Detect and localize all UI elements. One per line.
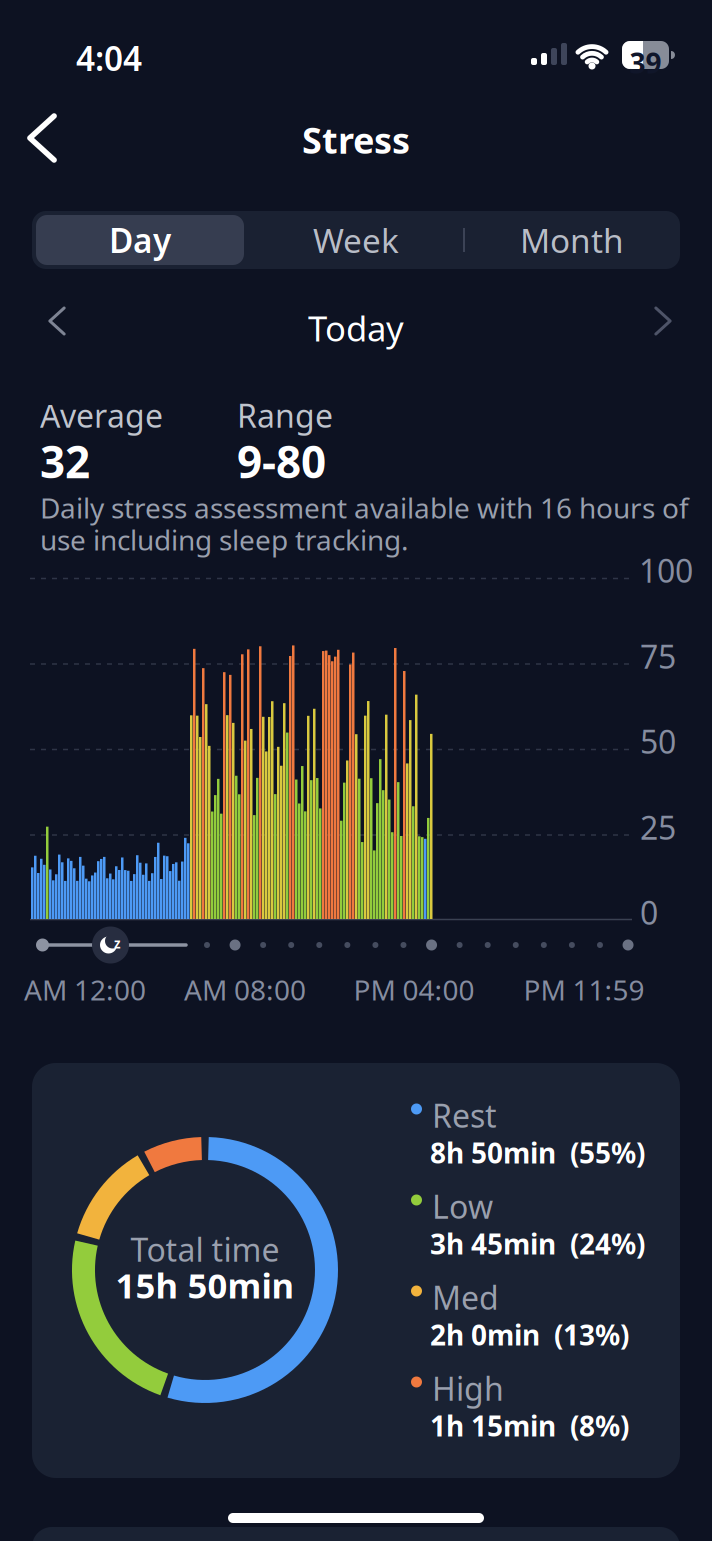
staticText: 32	[40, 432, 90, 490]
staticText: Day	[109, 218, 171, 262]
staticText: Week	[313, 218, 399, 262]
staticText: 1h 15min (8%)	[430, 1407, 629, 1444]
staticText: Rest	[432, 1094, 497, 1136]
staticText: 39	[629, 44, 661, 81]
staticText: 15h 50min	[115, 1262, 294, 1308]
staticText: Stress	[302, 116, 410, 164]
button[interactable]: Day	[36, 215, 244, 265]
staticText: 9-80	[237, 432, 326, 490]
staticText: Today	[308, 305, 404, 351]
staticText: Low	[432, 1185, 493, 1227]
staticText: 8h 50min (55%)	[430, 1134, 645, 1171]
staticText: Month	[520, 218, 624, 262]
staticText: PM 04:00	[353, 971, 474, 1008]
button[interactable]: Week	[248, 211, 464, 269]
staticText: 3h 45min (24%)	[430, 1225, 645, 1262]
staticText: 4:04	[76, 36, 142, 80]
staticText: AM 12:00	[24, 971, 146, 1008]
staticText: Average	[40, 394, 163, 436]
staticText: High	[432, 1367, 504, 1409]
staticText: Med	[432, 1276, 499, 1318]
staticText: 2h 0min (13%)	[430, 1316, 629, 1353]
staticText: 75	[640, 635, 676, 677]
staticText: use including sleep tracking.	[40, 521, 409, 558]
button[interactable]: Month	[464, 211, 680, 269]
staticText: AM 08:00	[184, 971, 306, 1008]
staticText: 25	[640, 806, 676, 848]
staticText: 50	[640, 720, 676, 762]
staticText: 0	[640, 891, 658, 933]
staticText: z	[114, 934, 121, 952]
staticText: PM 11:59	[523, 971, 644, 1008]
staticText: 100	[639, 549, 693, 591]
staticText: Daily stress assessment available with 1…	[40, 489, 689, 526]
staticText: Total time	[130, 1228, 279, 1270]
staticText: Range	[237, 394, 333, 436]
button[interactable]: Sleep period	[92, 926, 129, 963]
